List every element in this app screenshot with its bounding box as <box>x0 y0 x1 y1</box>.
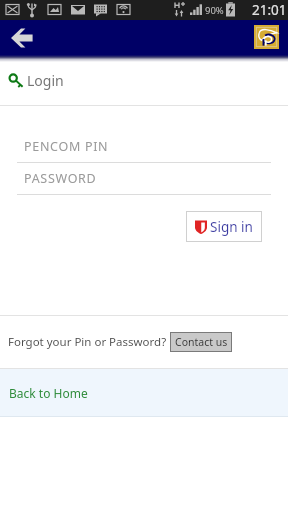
button[interactable]: PASSWORD <box>17 170 271 194</box>
staticText: 90% <box>205 4 224 17</box>
button[interactable]: Back to Home <box>0 369 288 416</box>
button[interactable]: PENCOM PIN <box>17 138 271 162</box>
staticText: Forgot your Pin or Password? <box>8 334 167 350</box>
staticText: Contact us <box>175 335 228 349</box>
staticText: PENCOM PIN <box>24 138 109 155</box>
button[interactable]: Login <box>0 55 288 105</box>
staticText: Sign in <box>210 218 253 236</box>
staticText: 21:01 <box>252 1 287 19</box>
button[interactable]: Back <box>6 22 38 54</box>
button[interactable]: Sign in <box>186 211 262 242</box>
button[interactable]: PenCom logo <box>254 25 279 49</box>
staticText: Back to Home <box>9 385 88 401</box>
staticText: PASSWORD <box>24 170 97 187</box>
button[interactable]: Contact us <box>170 332 232 352</box>
staticText: Login <box>27 71 64 90</box>
